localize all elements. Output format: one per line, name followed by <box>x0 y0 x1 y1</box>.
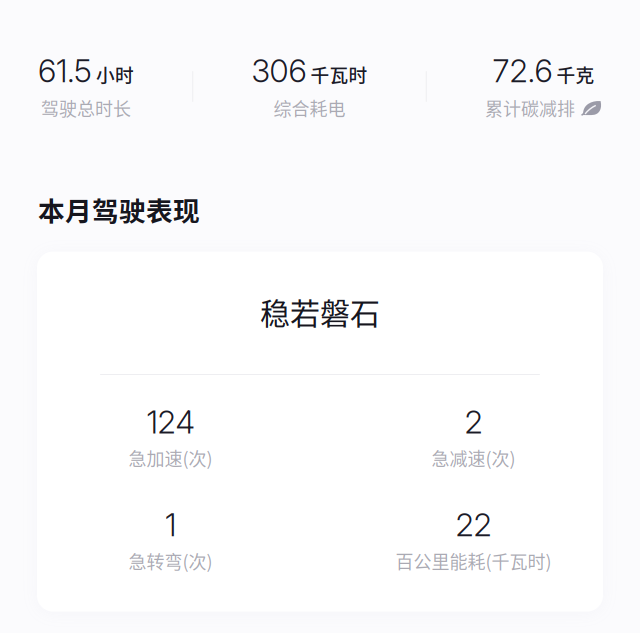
staticText: 1 <box>165 506 176 544</box>
staticText: 61.5 <box>38 52 92 90</box>
staticText: 稳若磐石 <box>260 290 380 333</box>
staticText: 小时 <box>96 61 134 88</box>
button[interactable]: 61.5 <box>38 52 134 121</box>
staticText: 驾驶总时长 <box>41 95 131 121</box>
staticText: 百公里能耗(千瓦时) <box>395 548 551 574</box>
button[interactable]: 1 <box>37 506 320 574</box>
staticText: 千瓦时 <box>310 61 367 88</box>
staticText: 急减速(次) <box>431 445 515 471</box>
staticText: 2 <box>464 403 482 441</box>
staticText: 综合耗电 <box>273 95 345 121</box>
button[interactable]: 124 <box>37 403 320 471</box>
staticText: 22 <box>455 506 491 544</box>
staticText: 急加速(次) <box>128 445 212 471</box>
button[interactable]: 306 <box>251 52 367 121</box>
staticText: 72.6 <box>492 52 552 90</box>
staticText: 急转弯(次) <box>128 548 212 574</box>
button[interactable]: 72.6 <box>485 52 602 121</box>
staticText: 累计碳减排 <box>485 95 575 121</box>
button[interactable]: 2 <box>320 403 603 471</box>
button[interactable]: 22 <box>320 506 603 574</box>
staticText: 千克 <box>556 61 594 88</box>
staticText: 306 <box>251 52 306 90</box>
staticText: 本月驾驶表现 <box>38 190 200 229</box>
staticText: 124 <box>146 403 194 441</box>
